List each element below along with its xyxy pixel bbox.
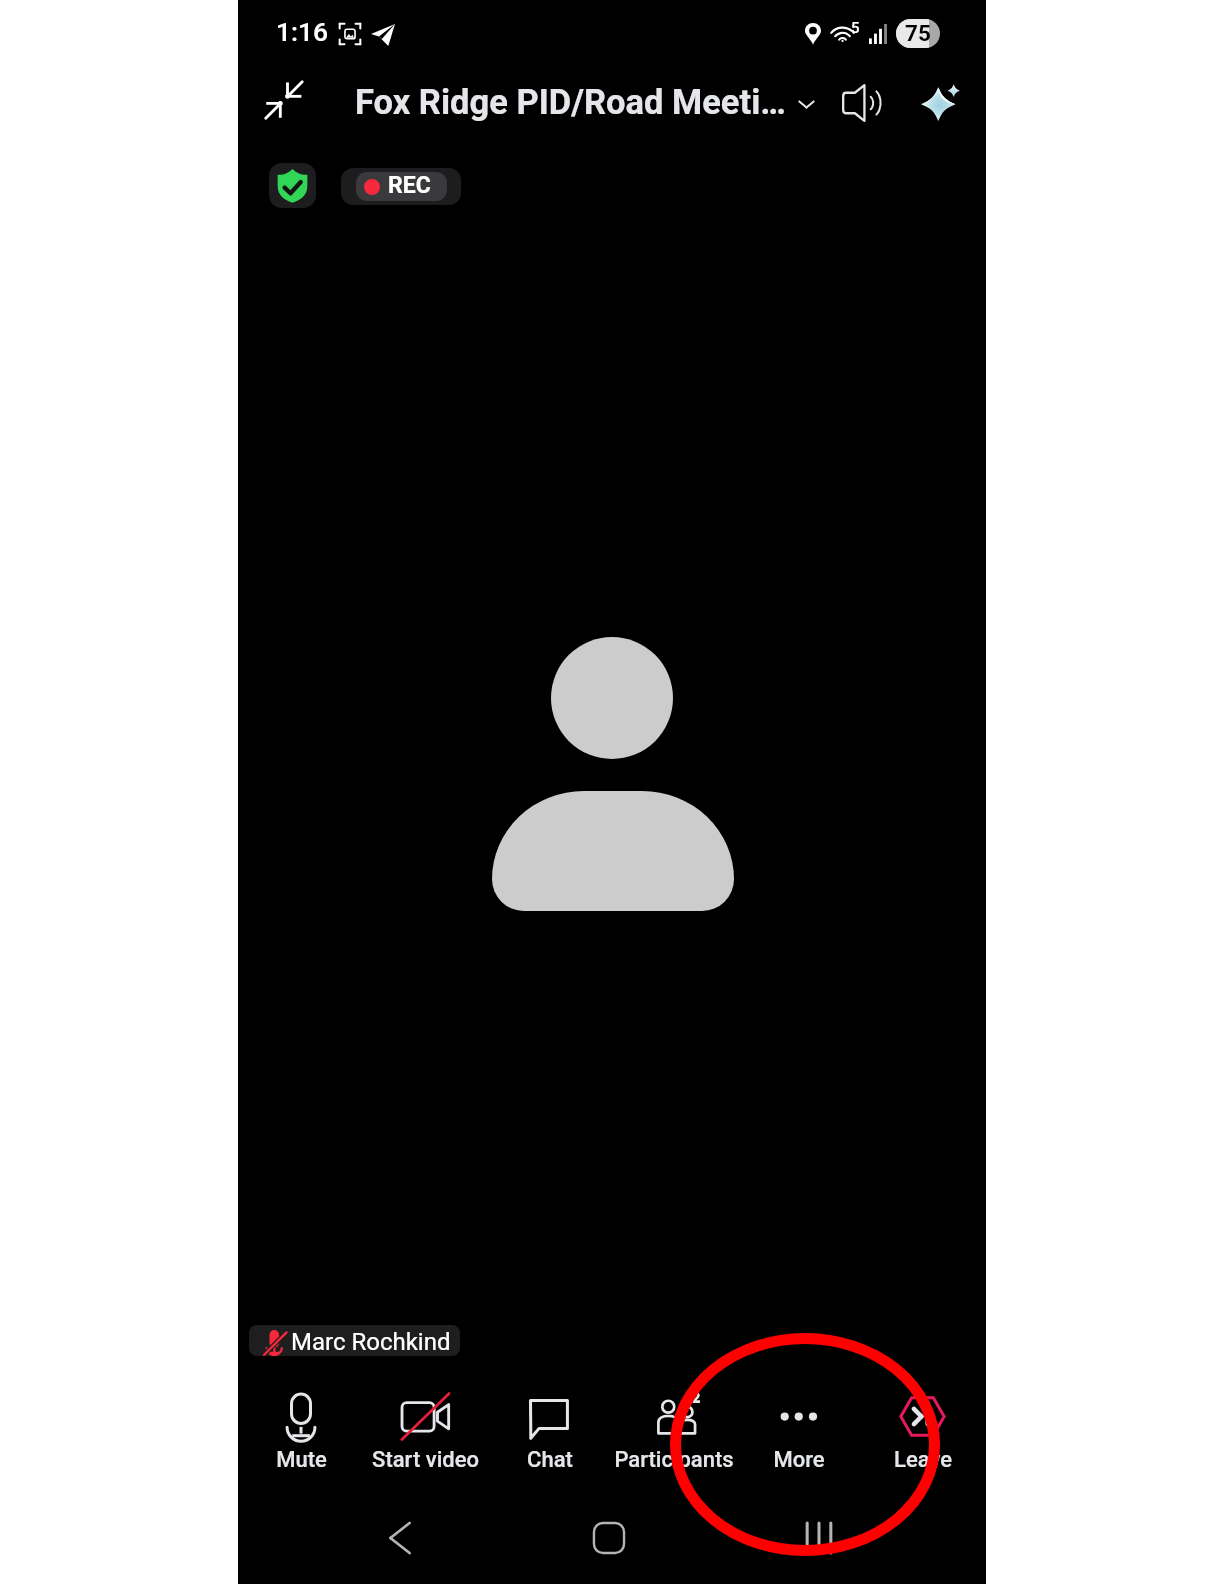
button[interactable]: Back <box>367 1505 433 1571</box>
staticText: 1:16 <box>276 16 329 47</box>
button[interactable]: Participants <box>584 1392 764 1473</box>
staticText: Mute <box>276 1447 327 1473</box>
staticText: 75 <box>905 20 931 46</box>
button[interactable]: Chat <box>460 1392 640 1473</box>
button[interactable]: AI Companion <box>914 76 966 128</box>
button[interactable]: End-to-end encryption <box>269 163 316 208</box>
button[interactable]: More <box>709 1392 889 1473</box>
staticText: 5 <box>851 19 860 37</box>
button[interactable]: Fox Ridge PID/Road Meeti… <box>355 82 786 122</box>
button[interactable]: Home <box>576 1505 642 1571</box>
button[interactable]: Recent apps <box>786 1505 852 1571</box>
staticText: Leave <box>894 1447 952 1473</box>
button[interactable]: Meeting options <box>786 84 826 124</box>
staticText: REC <box>388 172 431 199</box>
button[interactable]: Start video <box>335 1392 515 1473</box>
button[interactable]: Minimize <box>254 70 314 130</box>
button[interactable]: Mute <box>211 1392 391 1473</box>
staticText: Chat <box>527 1447 573 1473</box>
staticText: Fox Ridge PID/Road Meeti… <box>355 82 786 122</box>
staticText: More <box>773 1447 825 1473</box>
staticText: Participants <box>614 1447 734 1473</box>
button[interactable]: Speaker <box>830 72 892 134</box>
button[interactable]: Marc Rochkind <box>249 1325 460 1356</box>
staticText: Start video <box>372 1447 479 1473</box>
button[interactable]: REC <box>341 168 461 205</box>
button[interactable]: Leave <box>833 1392 1013 1473</box>
staticText: Marc Rochkind <box>291 1328 451 1356</box>
